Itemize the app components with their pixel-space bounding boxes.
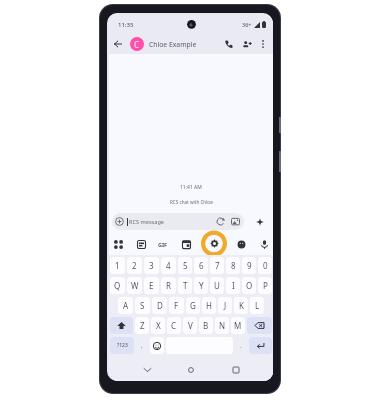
staticText: N: [219, 320, 226, 331]
staticText: I: [232, 280, 235, 291]
button[interactable]: Home: [184, 363, 198, 377]
button[interactable]: Enter: [249, 337, 272, 354]
staticText: 36+: [242, 21, 252, 28]
button[interactable]: ,: [135, 337, 149, 354]
staticText: Y: [199, 280, 204, 291]
staticText: L: [255, 300, 260, 311]
button[interactable]: 2: [127, 257, 142, 274]
button[interactable]: Apps: [110, 236, 126, 252]
button[interactable]: Stickers: [133, 236, 149, 252]
button[interactable]: Backspace: [247, 317, 272, 334]
staticText: J: [224, 300, 227, 311]
staticText: U: [214, 280, 220, 291]
staticText: V: [188, 320, 193, 331]
button[interactable]: Z: [135, 317, 149, 334]
staticText: E: [149, 280, 154, 291]
staticText: 5: [183, 260, 188, 271]
button[interactable]: 3: [144, 257, 159, 274]
staticText: B: [203, 320, 209, 331]
staticText: 3: [149, 260, 154, 271]
staticText: 1: [115, 260, 120, 271]
staticText: A: [123, 300, 129, 311]
button[interactable]: L: [250, 297, 264, 314]
button[interactable]: H: [202, 297, 216, 314]
button[interactable]: Calendar: [178, 236, 194, 252]
button[interactable]: Back: [111, 37, 125, 51]
button[interactable]: .: [234, 337, 248, 354]
staticText: 8: [231, 260, 236, 271]
button[interactable]: U: [210, 277, 224, 294]
button[interactable]: Q: [110, 277, 125, 294]
button[interactable]: 7: [210, 257, 224, 274]
staticText: ,: [141, 342, 143, 350]
staticText: 6: [199, 260, 204, 271]
button[interactable]: S: [135, 297, 150, 314]
button[interactable]: Settings: [201, 232, 227, 255]
button[interactable]: P: [258, 277, 272, 294]
staticText: T: [183, 280, 188, 291]
staticText: 0: [263, 260, 268, 271]
button[interactable]: More options: [257, 38, 269, 50]
staticText: 11:41 AM: [180, 184, 202, 191]
button[interactable]: X: [151, 317, 165, 334]
button[interactable]: Call: [222, 37, 236, 51]
staticText: 2: [132, 260, 137, 271]
button[interactable]: D: [152, 297, 167, 314]
button[interactable]: RCS message: [112, 213, 244, 230]
staticText: P: [263, 280, 268, 291]
button[interactable]: I: [226, 277, 240, 294]
button[interactable]: 4: [161, 257, 176, 274]
button[interactable]: N: [215, 317, 229, 334]
button[interactable]: 5: [178, 257, 192, 274]
button[interactable]: E: [144, 277, 159, 294]
staticText: 9: [247, 260, 252, 271]
staticText: H: [206, 300, 212, 311]
staticText: F: [174, 300, 179, 311]
staticText: M: [234, 320, 242, 331]
button[interactable]: G: [186, 297, 200, 314]
button[interactable]: 0: [258, 257, 272, 274]
button[interactable]: W: [127, 277, 142, 294]
button[interactable]: GIF: [155, 236, 171, 252]
staticText: O: [246, 280, 253, 291]
staticText: W: [131, 280, 139, 291]
button[interactable]: 6: [194, 257, 208, 274]
staticText: K: [239, 300, 244, 311]
button[interactable]: 9: [242, 257, 256, 274]
button[interactable]: R: [161, 277, 176, 294]
button[interactable]: Emoji: [233, 236, 249, 252]
button[interactable]: Recents: [229, 363, 243, 377]
staticText: 7: [215, 260, 220, 271]
button[interactable]: Send: [252, 214, 268, 230]
staticText: 4: [166, 260, 171, 271]
button[interactable]: J: [218, 297, 232, 314]
button[interactable]: Y: [194, 277, 208, 294]
button[interactable]: Hide keyboard: [140, 363, 154, 377]
button[interactable]: M: [231, 317, 245, 334]
button[interactable]: A: [118, 297, 133, 314]
staticText: .: [240, 342, 242, 350]
button[interactable]: ?123: [110, 337, 134, 354]
button[interactable]: Voice: [256, 236, 272, 252]
button[interactable]: T: [178, 277, 192, 294]
staticText: G: [190, 300, 196, 311]
button[interactable]: O: [242, 277, 256, 294]
button[interactable]: F: [169, 297, 184, 314]
staticText: Z: [140, 320, 145, 331]
staticText: Chloe Example: [149, 40, 197, 49]
button[interactable]: Shift: [110, 317, 133, 334]
button[interactable]: V: [183, 317, 197, 334]
button[interactable]: C: [167, 317, 181, 334]
button[interactable]: Add people: [240, 37, 254, 51]
staticText: X: [156, 320, 161, 331]
button[interactable]: Emoji: [150, 337, 164, 354]
staticText: Q: [114, 280, 121, 291]
staticText: GIF: [158, 241, 168, 248]
staticText: RCS chat with Chloe: [170, 199, 213, 205]
button[interactable]: 1: [110, 257, 125, 274]
button[interactable]: 8: [226, 257, 240, 274]
button[interactable]: K: [234, 297, 248, 314]
staticText: C: [171, 320, 177, 331]
button[interactable]: B: [199, 317, 213, 334]
